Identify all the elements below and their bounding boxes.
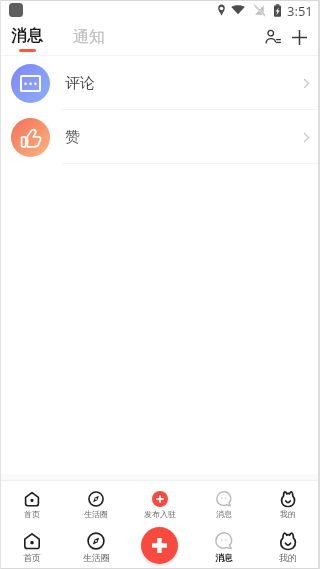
staticText: 3:51 <box>287 2 313 20</box>
staticText: 通知 <box>73 27 105 47</box>
staticText: 消息 <box>216 509 232 518</box>
button[interactable]: 消息 <box>192 532 256 562</box>
staticText: 赞 <box>65 128 80 147</box>
staticText: 发布入驻 <box>144 509 176 518</box>
staticText: 消息 <box>11 26 43 46</box>
staticText: 我的 <box>280 509 296 518</box>
staticText: 消息 <box>215 552 233 562</box>
button[interactable]: Add <box>286 24 312 50</box>
button[interactable]: 消息 <box>5 22 49 52</box>
button[interactable]: 生活圈 <box>64 491 128 518</box>
staticText: 生活圈 <box>84 509 108 518</box>
staticText: 生活圈 <box>83 552 110 562</box>
staticText: 首页 <box>24 509 40 518</box>
button[interactable]: Publish <box>141 527 178 564</box>
button[interactable]: 评论 <box>0 56 320 110</box>
button[interactable]: 发布入驻 <box>128 491 192 518</box>
button[interactable]: 首页 <box>0 532 64 562</box>
button[interactable]: 通知 <box>67 27 111 47</box>
button[interactable]: 我的 <box>256 491 320 518</box>
staticText: 评论 <box>65 74 95 93</box>
button[interactable]: Contacts <box>260 24 286 50</box>
button[interactable]: 我的 <box>256 532 320 562</box>
staticText: 我的 <box>279 552 297 562</box>
staticText: 首页 <box>23 552 41 562</box>
button[interactable]: 赞 <box>0 110 320 164</box>
button[interactable]: 首页 <box>0 491 64 518</box>
button[interactable]: 消息 <box>192 491 256 518</box>
button[interactable]: 生活圈 <box>64 532 128 562</box>
